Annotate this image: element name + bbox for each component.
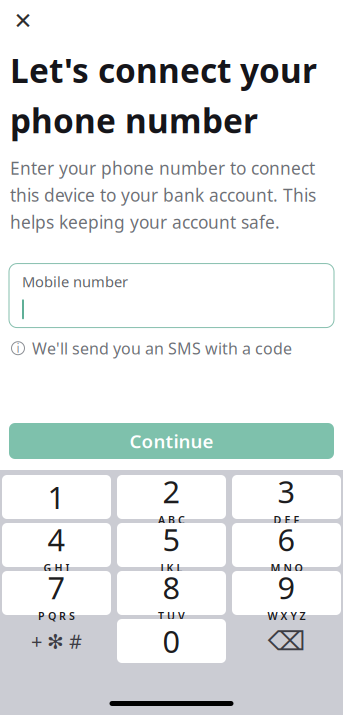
staticText: P Q R S — [38, 609, 75, 623]
staticText: 7 — [47, 567, 65, 608]
button[interactable]: 0 — [117, 619, 226, 663]
button[interactable]: Continue — [9, 423, 334, 459]
staticText: J K L — [160, 561, 182, 575]
staticText: ⌫ — [267, 626, 305, 656]
staticText: Let's connect your phone number — [10, 48, 317, 142]
staticText: A B C — [158, 513, 185, 527]
staticText: M N O — [270, 561, 302, 575]
staticText: 0 — [162, 621, 180, 661]
button[interactable]: 4 — [2, 523, 111, 567]
staticText: 3 — [277, 471, 295, 512]
button[interactable]: 2 — [117, 475, 226, 519]
button[interactable]: 8 — [117, 571, 226, 615]
button[interactable]: 7 — [2, 571, 111, 615]
button[interactable]: 6 — [232, 523, 341, 567]
staticText: 2 — [162, 471, 180, 512]
staticText: Continue — [129, 429, 213, 453]
button[interactable]: Close — [8, 6, 38, 36]
button[interactable]: Plus, star, pound — [2, 619, 111, 663]
staticText: We'll send you an SMS with a code — [32, 338, 292, 359]
staticText: 4 — [47, 519, 65, 560]
staticText: T U V — [158, 609, 185, 623]
button[interactable]: Delete — [232, 619, 341, 663]
staticText: ✕ — [13, 8, 32, 34]
staticText: 8 — [162, 567, 180, 608]
staticText: Enter your phone number to connect this … — [10, 156, 316, 234]
staticText: i — [16, 340, 19, 356]
button[interactable]: 1 — [2, 475, 111, 519]
staticText: Mobile number — [22, 272, 128, 291]
staticText: + ✻ # — [31, 628, 82, 654]
staticText: 5 — [162, 519, 180, 560]
staticText: W X Y Z — [267, 609, 305, 623]
staticText: G H I — [43, 561, 69, 575]
staticText: D E F — [273, 513, 299, 527]
button[interactable]: 9 — [232, 571, 341, 615]
button[interactable]: 5 — [117, 523, 226, 567]
staticText: 1 — [47, 477, 65, 517]
button[interactable]: 3 — [232, 475, 341, 519]
staticText: 6 — [277, 519, 295, 560]
staticText: 9 — [277, 567, 295, 608]
